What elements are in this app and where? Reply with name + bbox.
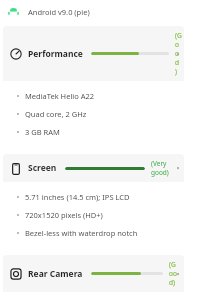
staticText: 3 GB RAM — [25, 127, 60, 137]
staticText: Rear Camera — [28, 268, 83, 280]
button[interactable]: Performance — [3, 26, 184, 81]
staticText: Screen — [28, 162, 57, 174]
staticText: MediaTek Helio A22 — [25, 91, 95, 101]
button[interactable]: MediaTek Helio A22 — [3, 87, 184, 105]
staticText: 720x1520 pixels (HD+) — [25, 210, 103, 220]
button[interactable]: 5.71 inches (14.5 cm); IPS LCD — [3, 188, 184, 206]
button[interactable]: 3 GB RAM — [3, 123, 184, 141]
staticText: Android v9.0 (pie) — [28, 7, 90, 17]
staticText: 5.71 inches (14.5 cm); IPS LCD — [25, 192, 130, 202]
staticText: (Good) — [169, 260, 178, 287]
button[interactable]: 720x1520 pixels (HD+) — [3, 206, 184, 224]
staticText: Quad core, 2 GHz — [25, 109, 87, 119]
staticText: Bezel-less with waterdrop notch — [25, 228, 138, 238]
button[interactable]: Quad core, 2 GHz — [3, 105, 184, 123]
button[interactable]: Bezel-less with waterdrop notch — [3, 224, 184, 242]
button[interactable]: Screen — [3, 154, 184, 182]
staticText: Performance — [28, 48, 83, 60]
staticText: (Very good) — [151, 159, 178, 177]
button[interactable]: Rear Camera — [3, 255, 184, 292]
staticText: (Good) — [175, 31, 178, 76]
